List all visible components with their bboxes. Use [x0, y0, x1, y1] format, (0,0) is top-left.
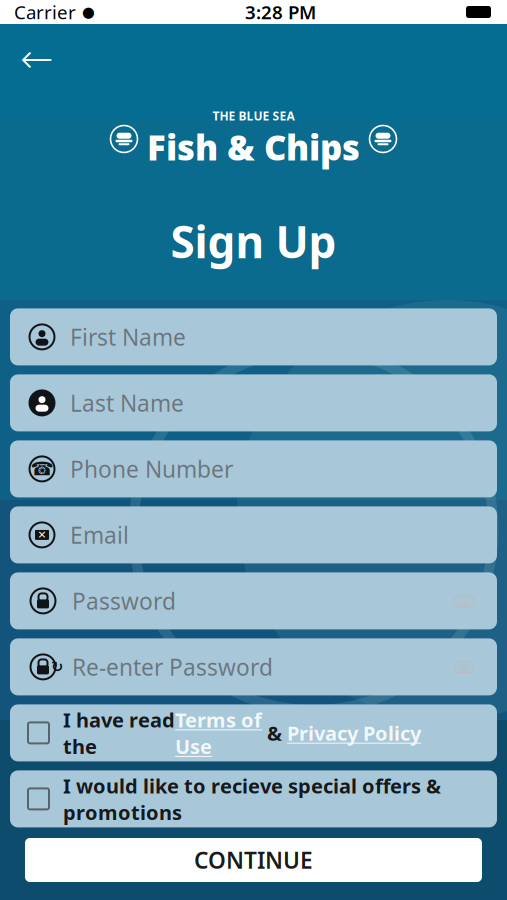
- staticText: 3:28 PM: [245, 0, 316, 24]
- staticText: Sign Up: [170, 212, 336, 270]
- button[interactable]: ☎: [10, 440, 497, 497]
- staticText: CONTINUE: [194, 845, 313, 875]
- button[interactable]: Back: [14, 36, 60, 82]
- staticText: Email: [70, 520, 129, 550]
- button[interactable]: CONTINUE: [25, 838, 482, 882]
- staticText: ↻: [51, 659, 63, 675]
- staticText: I would like to recieve special offers &…: [63, 772, 441, 825]
- button[interactable]: ↻: [10, 638, 497, 695]
- staticText: Phone Number: [70, 454, 233, 484]
- staticText: &: [262, 720, 287, 746]
- staticText: ●: [82, 4, 95, 20]
- button[interactable]: Last Name: [10, 374, 497, 431]
- button[interactable]: Password: [10, 572, 497, 629]
- button[interactable]: ✕: [10, 506, 497, 563]
- staticText: ←: [20, 36, 54, 82]
- staticText: Re-enter Password: [72, 652, 273, 682]
- staticText: Last Name: [70, 388, 184, 418]
- staticText: I have read the: [63, 706, 175, 759]
- button[interactable]: I would like to recieve special offers &…: [10, 770, 497, 827]
- staticText: Terms of Use: [175, 706, 262, 759]
- button[interactable]: First Name: [10, 308, 497, 365]
- staticText: Carrier: [14, 0, 76, 24]
- staticText: ☎: [30, 458, 53, 479]
- staticText: THE BLUE SEA: [212, 108, 294, 124]
- staticText: Password: [72, 586, 176, 616]
- staticText: Fish & Chips: [147, 124, 360, 170]
- staticText: First Name: [70, 322, 186, 352]
- staticText: Privacy Policy: [287, 720, 421, 746]
- staticText: ✕: [37, 529, 46, 541]
- button[interactable]: I have read the: [10, 704, 497, 761]
